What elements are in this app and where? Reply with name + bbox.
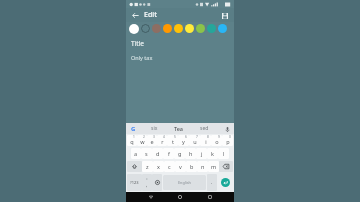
- button[interactable]: b: [186, 161, 197, 172]
- staticText: sed: [200, 125, 209, 132]
- button[interactable]: x: [153, 161, 164, 172]
- staticText: ?123: [130, 180, 139, 185]
- button[interactable]: Color 7: [207, 24, 216, 33]
- button[interactable]: Recents: [205, 192, 215, 202]
- staticText: j: [201, 150, 203, 157]
- staticText: English: [178, 180, 191, 185]
- staticText: 8: [207, 135, 209, 139]
- button[interactable]: j: [196, 148, 207, 159]
- button[interactable]: Back: [130, 10, 141, 21]
- staticText: 1: [133, 135, 135, 139]
- button[interactable]: s: [141, 148, 152, 159]
- button[interactable]: l: [218, 148, 229, 159]
- staticText: Title: [131, 39, 144, 48]
- staticText: Edit: [144, 10, 157, 20]
- button[interactable]: 3: [147, 135, 157, 146]
- staticText: t: [172, 138, 174, 145]
- staticText: 5: [174, 135, 176, 139]
- button[interactable]: Color 6: [196, 24, 205, 33]
- button[interactable]: Save: [219, 10, 230, 21]
- button[interactable]: Color 0: [129, 24, 139, 34]
- button[interactable]: °: [142, 174, 152, 191]
- staticText: i: [205, 138, 207, 145]
- button[interactable]: Color 2: [152, 24, 161, 33]
- staticText: 6: [185, 135, 187, 139]
- staticText: s: [145, 150, 148, 157]
- button[interactable]: 5: [167, 135, 178, 146]
- staticText: k: [211, 150, 214, 157]
- staticText: 3: [153, 135, 155, 139]
- staticText: e: [150, 138, 154, 145]
- button[interactable]: Color 5: [185, 24, 194, 33]
- button[interactable]: Home: [175, 192, 185, 202]
- staticText: l: [223, 150, 225, 157]
- button[interactable]: g: [174, 148, 185, 159]
- button[interactable]: 2: [137, 135, 147, 146]
- button[interactable]: Color 8: [218, 24, 227, 33]
- button[interactable]: Enter: [221, 178, 230, 187]
- button[interactable]: z: [142, 161, 153, 172]
- button[interactable]: n: [197, 161, 208, 172]
- staticText: 7: [196, 135, 198, 139]
- button[interactable]: 1: [127, 135, 137, 146]
- staticText: 2: [143, 135, 145, 139]
- button[interactable]: k: [207, 148, 218, 159]
- staticText: 0: [229, 135, 231, 139]
- staticText: m: [211, 163, 217, 170]
- button[interactable]: m: [208, 161, 219, 172]
- button[interactable]: 4: [157, 135, 167, 146]
- button[interactable]: 8: [200, 135, 211, 146]
- staticText: Only tax: [131, 54, 153, 61]
- staticText: a: [134, 150, 138, 157]
- button[interactable]: Google: [129, 125, 137, 133]
- staticText: g: [178, 150, 182, 157]
- button[interactable]: a: [131, 148, 141, 159]
- button[interactable]: 6: [178, 135, 189, 146]
- button[interactable]: f: [163, 148, 174, 159]
- staticText: z: [146, 163, 149, 170]
- button[interactable]: 7: [189, 135, 200, 146]
- staticText: d: [156, 150, 160, 157]
- staticText: c: [168, 163, 171, 170]
- staticText: .: [211, 179, 213, 186]
- staticText: u: [193, 138, 197, 145]
- button[interactable]: Voice input: [223, 125, 231, 133]
- button[interactable]: c: [164, 161, 175, 172]
- staticText: G: [131, 125, 136, 133]
- button[interactable]: Color 3: [163, 24, 172, 33]
- button[interactable]: v: [175, 161, 186, 172]
- staticText: y: [182, 138, 185, 145]
- staticText: f: [168, 150, 170, 157]
- staticText: o: [215, 138, 219, 145]
- staticText: ,: [146, 182, 148, 188]
- button[interactable]: d: [152, 148, 163, 159]
- staticText: h: [189, 150, 193, 157]
- button[interactable]: [219, 161, 233, 172]
- staticText: r: [161, 138, 164, 145]
- staticText: p: [226, 138, 230, 145]
- button[interactable]: 0: [222, 135, 233, 146]
- staticText: °: [146, 177, 148, 182]
- button[interactable]: [152, 174, 162, 191]
- staticText: 4: [163, 135, 165, 139]
- button[interactable]: English: [163, 175, 206, 190]
- staticText: v: [179, 163, 182, 170]
- button[interactable]: h: [185, 148, 196, 159]
- staticText: 9: [218, 135, 220, 139]
- staticText: x: [157, 163, 160, 170]
- button[interactable]: Color 1: [141, 24, 150, 33]
- staticText: Tea: [174, 125, 184, 132]
- button[interactable]: ?123: [127, 174, 142, 191]
- button[interactable]: 9: [211, 135, 222, 146]
- button[interactable]: Back: [146, 192, 156, 202]
- staticText: n: [201, 163, 205, 170]
- button[interactable]: .: [207, 174, 217, 191]
- button[interactable]: [127, 161, 142, 172]
- button[interactable]: Color 4: [174, 24, 183, 33]
- staticText: b: [190, 163, 194, 170]
- staticText: q: [130, 138, 134, 145]
- staticText: w: [140, 138, 145, 145]
- staticText: six: [151, 125, 158, 132]
